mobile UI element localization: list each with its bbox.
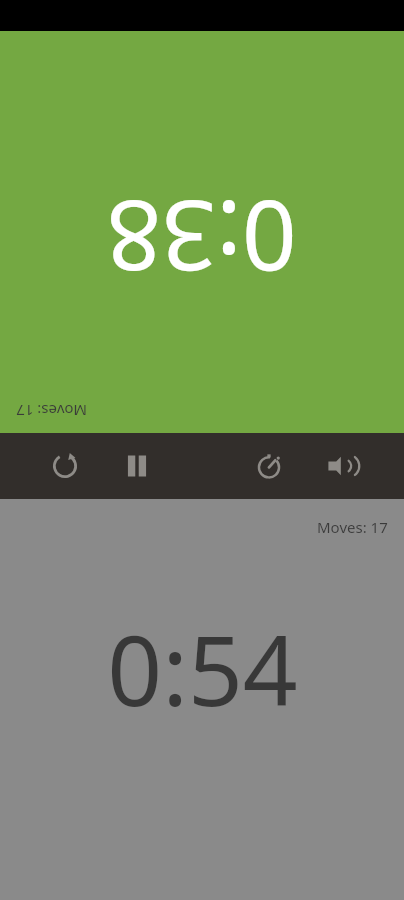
button[interactable]: Sound	[314, 439, 368, 493]
staticText: 0:54	[107, 603, 298, 734]
button[interactable]: Restart	[38, 439, 92, 493]
button[interactable]: Pause	[110, 439, 164, 493]
staticText: Moves: 17	[16, 401, 87, 421]
staticText: 0:38	[106, 173, 297, 304]
staticText: Moves: 17	[317, 517, 388, 537]
button[interactable]: Timer settings	[242, 439, 296, 493]
